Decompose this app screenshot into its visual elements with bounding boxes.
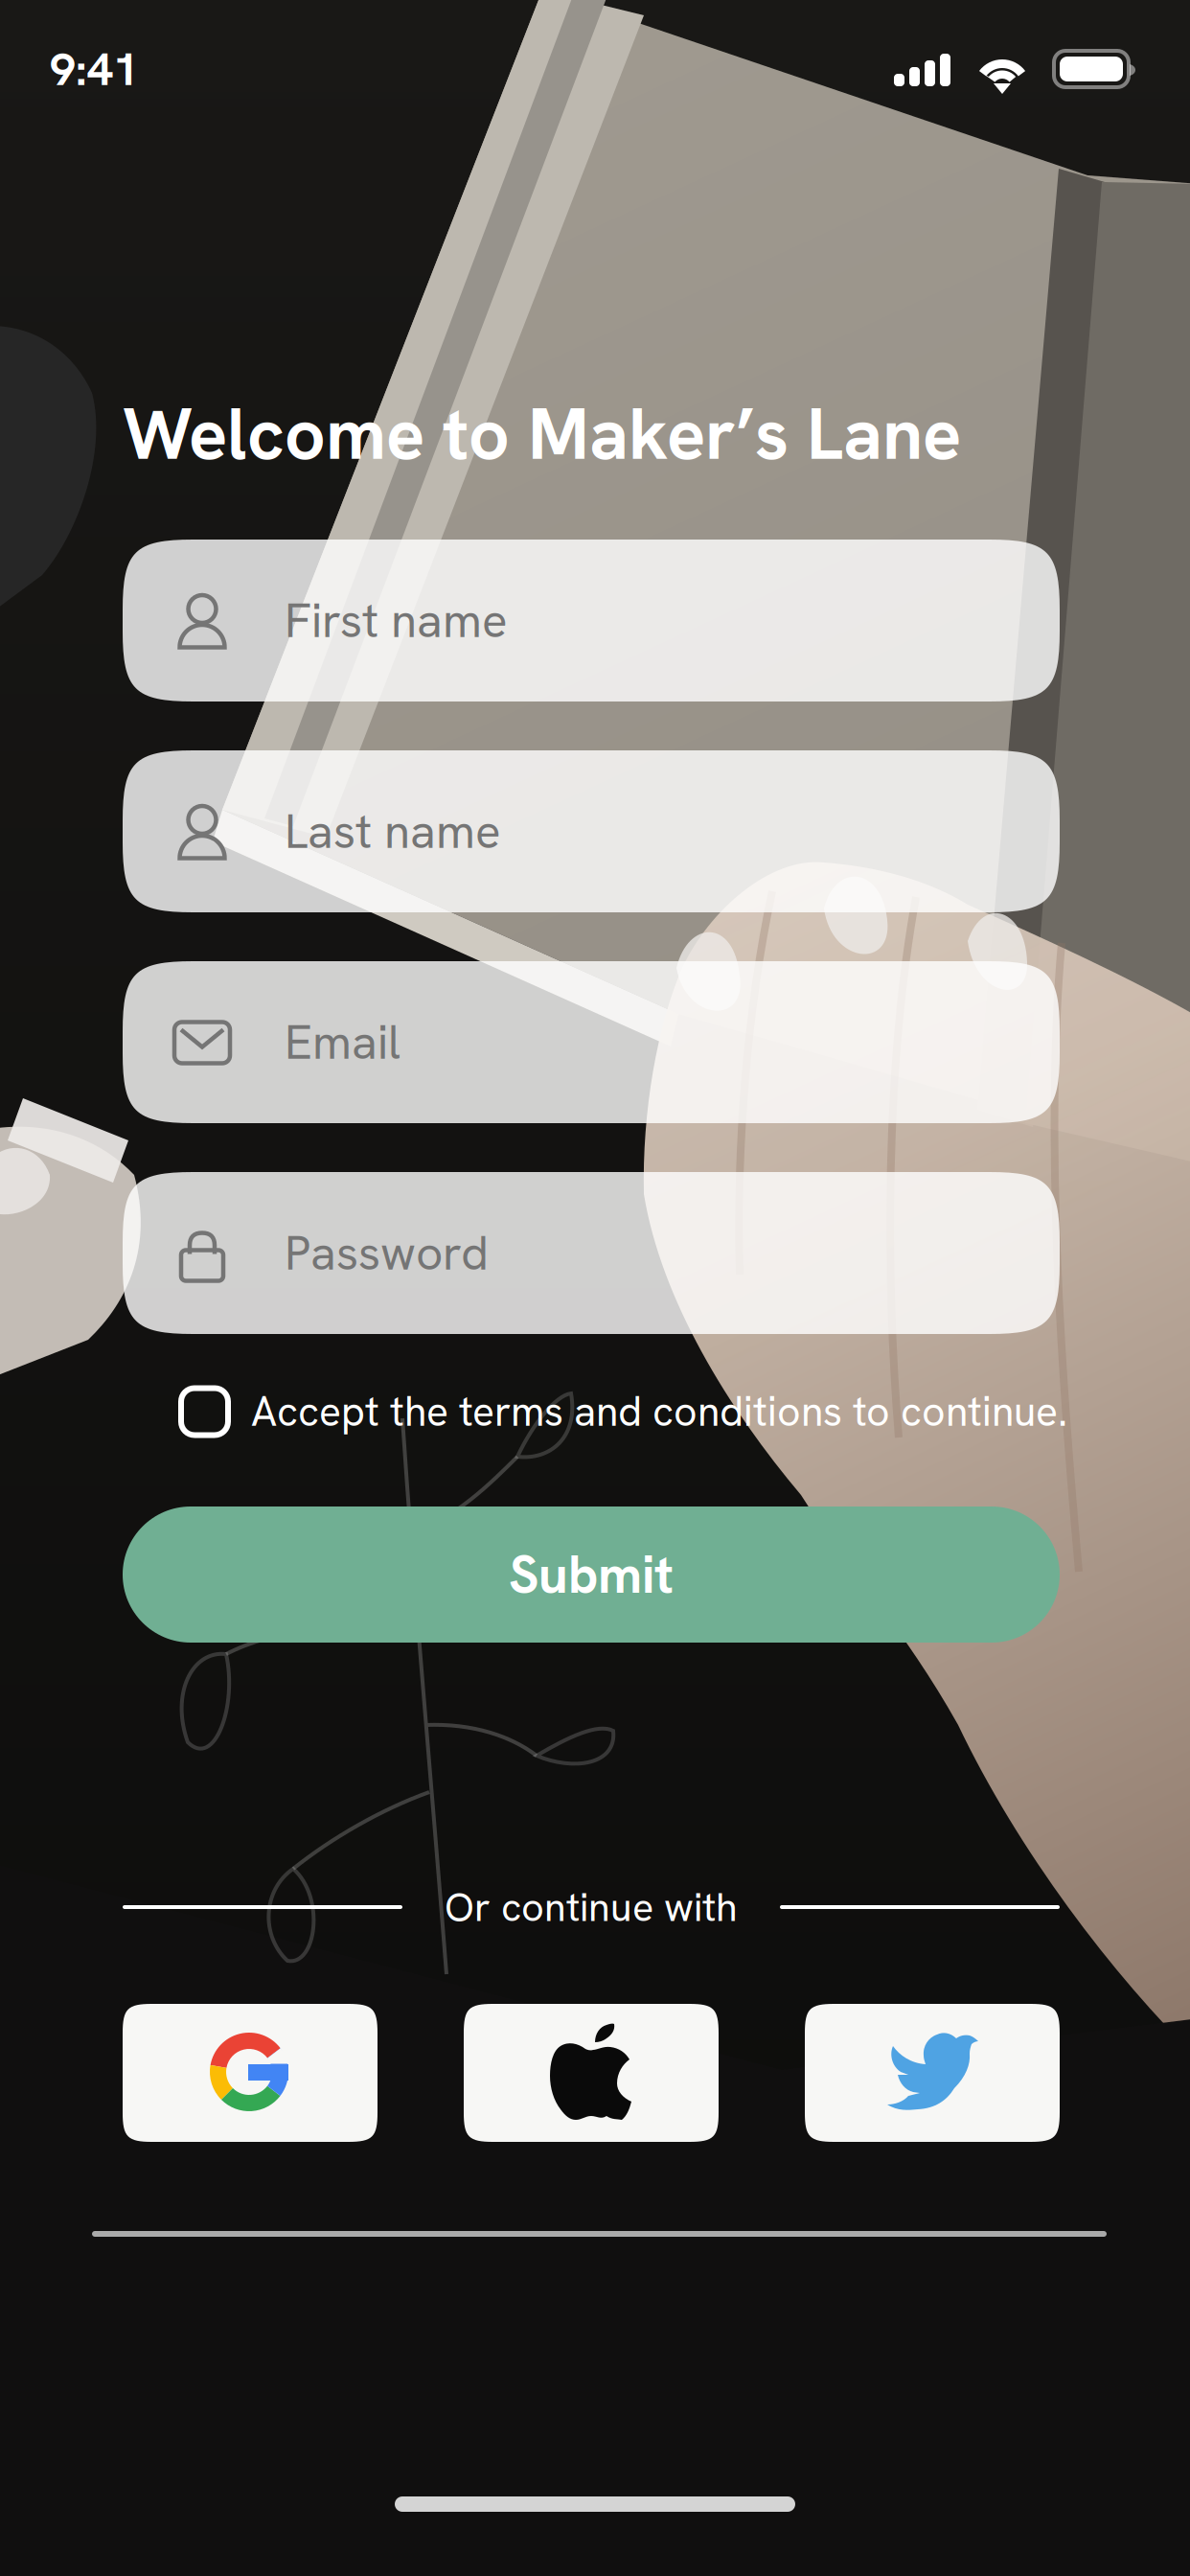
button[interactable]: Sign in with Apple xyxy=(464,2004,719,2142)
staticText: 9:41 xyxy=(50,39,139,99)
button[interactable]: First name xyxy=(123,540,1060,701)
staticText: Or continue with xyxy=(445,1881,738,1933)
button[interactable]: Sign in with Google xyxy=(123,2004,378,2142)
button[interactable]: Password xyxy=(123,1172,1060,1334)
staticText: Accept the terms and conditions to conti… xyxy=(251,1385,1067,1438)
button[interactable]: Email xyxy=(123,961,1060,1123)
button[interactable]: Sign in with Twitter xyxy=(805,2004,1060,2142)
staticText: Last name xyxy=(285,801,501,862)
button[interactable]: Last name xyxy=(123,750,1060,912)
button[interactable]: Submit xyxy=(123,1506,1060,1643)
staticText: Welcome to Maker’s Lane xyxy=(123,387,961,480)
staticText: First name xyxy=(285,590,508,651)
staticText: Email xyxy=(285,1011,400,1073)
staticText: Submit xyxy=(509,1540,674,1609)
staticText: Password xyxy=(285,1222,489,1284)
button[interactable]: Accept the terms and conditions to conti… xyxy=(181,1377,1101,1446)
